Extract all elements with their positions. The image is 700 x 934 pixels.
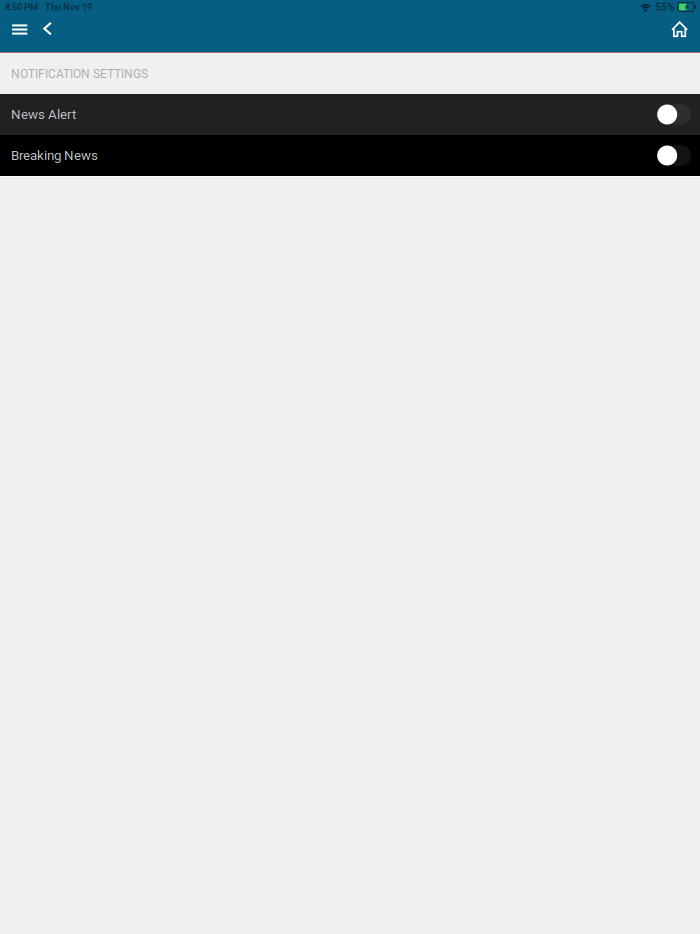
button[interactable]: Menu — [8, 14, 31, 52]
button[interactable]: News Alert — [0, 94, 700, 135]
staticText: NOTIFICATION SETTINGS — [11, 67, 148, 81]
staticText: Thu Nov 19 — [45, 1, 92, 12]
staticText: 55% — [655, 1, 675, 13]
staticText: 8:50 PM — [5, 1, 38, 12]
staticText: Breaking News — [11, 148, 98, 163]
button[interactable]: Back — [31, 14, 54, 52]
button[interactable]: Breaking News — [0, 135, 700, 176]
staticText: News Alert — [11, 107, 76, 122]
button[interactable]: Home — [667, 14, 692, 52]
